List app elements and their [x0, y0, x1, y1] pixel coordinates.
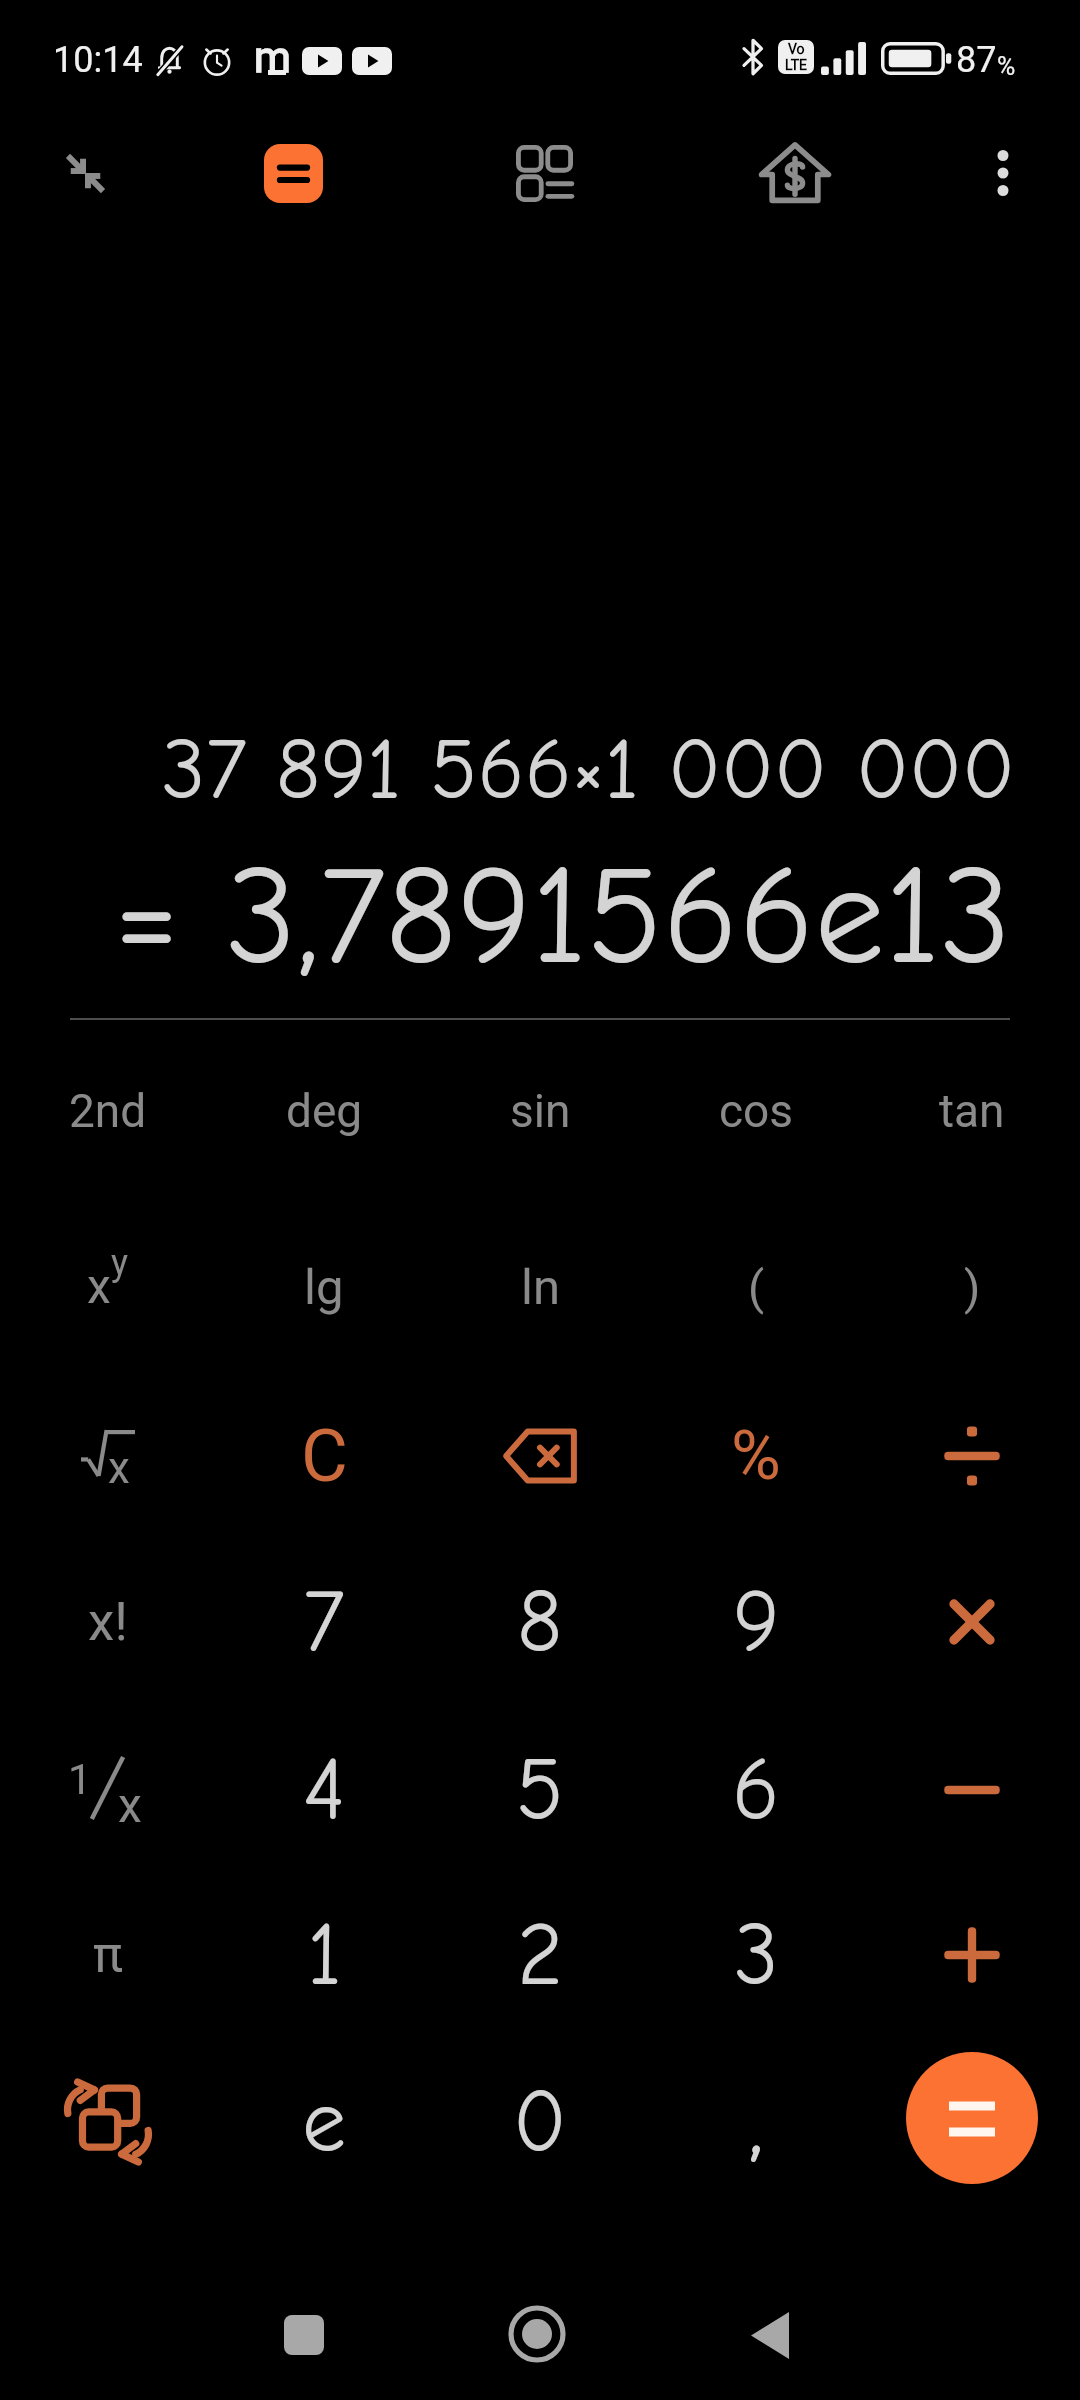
staticText: 1 [307, 1905, 342, 2006]
button[interactable]: 1 [216, 1871, 432, 2039]
staticText: 2 [517, 1905, 564, 2006]
button[interactable]: x [0, 1372, 216, 1540]
button[interactable]: lg [216, 1203, 432, 1371]
button[interactable]: C [216, 1372, 432, 1540]
button[interactable]: 7 [216, 1538, 432, 1706]
staticText: ) [964, 1260, 981, 1315]
button[interactable]: Plus [864, 1871, 1080, 2039]
button[interactable]: Calculator [228, 108, 358, 238]
staticText: m [254, 33, 291, 82]
button[interactable]: Back [710, 2275, 830, 2395]
staticText: y [111, 1242, 129, 1284]
staticText: 0 [513, 2072, 567, 2173]
staticText: , [748, 2067, 764, 2177]
button[interactable]: 0 [432, 2038, 648, 2206]
staticText: cos [719, 1084, 794, 1138]
button[interactable]: Unit converter [479, 108, 609, 238]
staticText: x [118, 1777, 142, 1833]
staticText: Vo [788, 41, 805, 57]
staticText: e [302, 2072, 347, 2173]
button[interactable]: Divide [864, 1372, 1080, 1540]
button[interactable]: Minus [864, 1706, 1080, 1874]
staticText: ln [521, 1259, 560, 1316]
button[interactable]: ln [432, 1203, 648, 1371]
button[interactable]: , [648, 2038, 864, 2206]
staticText: = 3,7891566e13 [114, 836, 1011, 997]
staticText: π [93, 1926, 123, 1985]
button[interactable]: Multiply [864, 1538, 1080, 1706]
button[interactable]: ) [864, 1203, 1080, 1371]
button[interactable]: 5 [432, 1706, 648, 1874]
staticText: 8 [517, 1572, 563, 1673]
button[interactable]: 1 [0, 1706, 216, 1874]
button[interactable]: deg [216, 1027, 432, 1195]
staticText: % [731, 1416, 781, 1496]
button[interactable]: 6 [648, 1706, 864, 1874]
staticText: 4 [303, 1740, 346, 1841]
button[interactable]: cos [648, 1027, 864, 1195]
staticText: % [997, 52, 1016, 81]
button[interactable]: π [0, 1871, 216, 2039]
button[interactable]: 2 [432, 1871, 648, 2039]
button[interactable]: Loan calculator [730, 108, 860, 238]
staticText: deg [286, 1084, 363, 1138]
button[interactable]: x [0, 1203, 216, 1371]
button[interactable]: 3 [648, 1871, 864, 2039]
staticText: 5 [516, 1740, 564, 1841]
staticText: 6 [732, 1740, 780, 1841]
staticText: tan [939, 1084, 1005, 1138]
button[interactable]: Equals [906, 2052, 1038, 2184]
button[interactable]: Convert [0, 2038, 216, 2206]
staticText: 87 [956, 39, 997, 81]
staticText: 9 [733, 1572, 780, 1673]
staticText: x [87, 1258, 111, 1314]
staticText: LTE [785, 57, 807, 73]
button[interactable]: e [216, 2038, 432, 2206]
button[interactable]: Recents [244, 2275, 364, 2395]
button[interactable]: Collapse [20, 108, 150, 238]
staticText: 10:14 [53, 39, 143, 81]
button[interactable]: x! [0, 1538, 216, 1706]
button[interactable]: ( [648, 1203, 864, 1371]
staticText: 3 [734, 1905, 779, 2006]
button[interactable]: 4 [216, 1706, 432, 1874]
staticText: 1 [68, 1755, 92, 1804]
staticText: lg [304, 1259, 344, 1316]
staticText: x [108, 1442, 130, 1494]
button[interactable]: Backspace [432, 1372, 648, 1540]
staticText: C [301, 1414, 348, 1498]
staticText: 2nd [69, 1084, 147, 1138]
staticText: 37 891 566×1 000 000 [161, 720, 1015, 820]
button[interactable]: % [648, 1372, 864, 1540]
button[interactable]: 2nd [0, 1027, 216, 1195]
button[interactable]: 8 [432, 1538, 648, 1706]
staticText: sin [510, 1084, 571, 1138]
staticText: x! [88, 1591, 128, 1653]
button[interactable]: sin [432, 1027, 648, 1195]
staticText: 7 [303, 1572, 345, 1673]
button[interactable]: Home [477, 2274, 597, 2394]
button[interactable]: 9 [648, 1538, 864, 1706]
button[interactable]: tan [864, 1027, 1080, 1195]
button[interactable]: More options [943, 113, 1063, 233]
staticText: ( [748, 1260, 765, 1315]
